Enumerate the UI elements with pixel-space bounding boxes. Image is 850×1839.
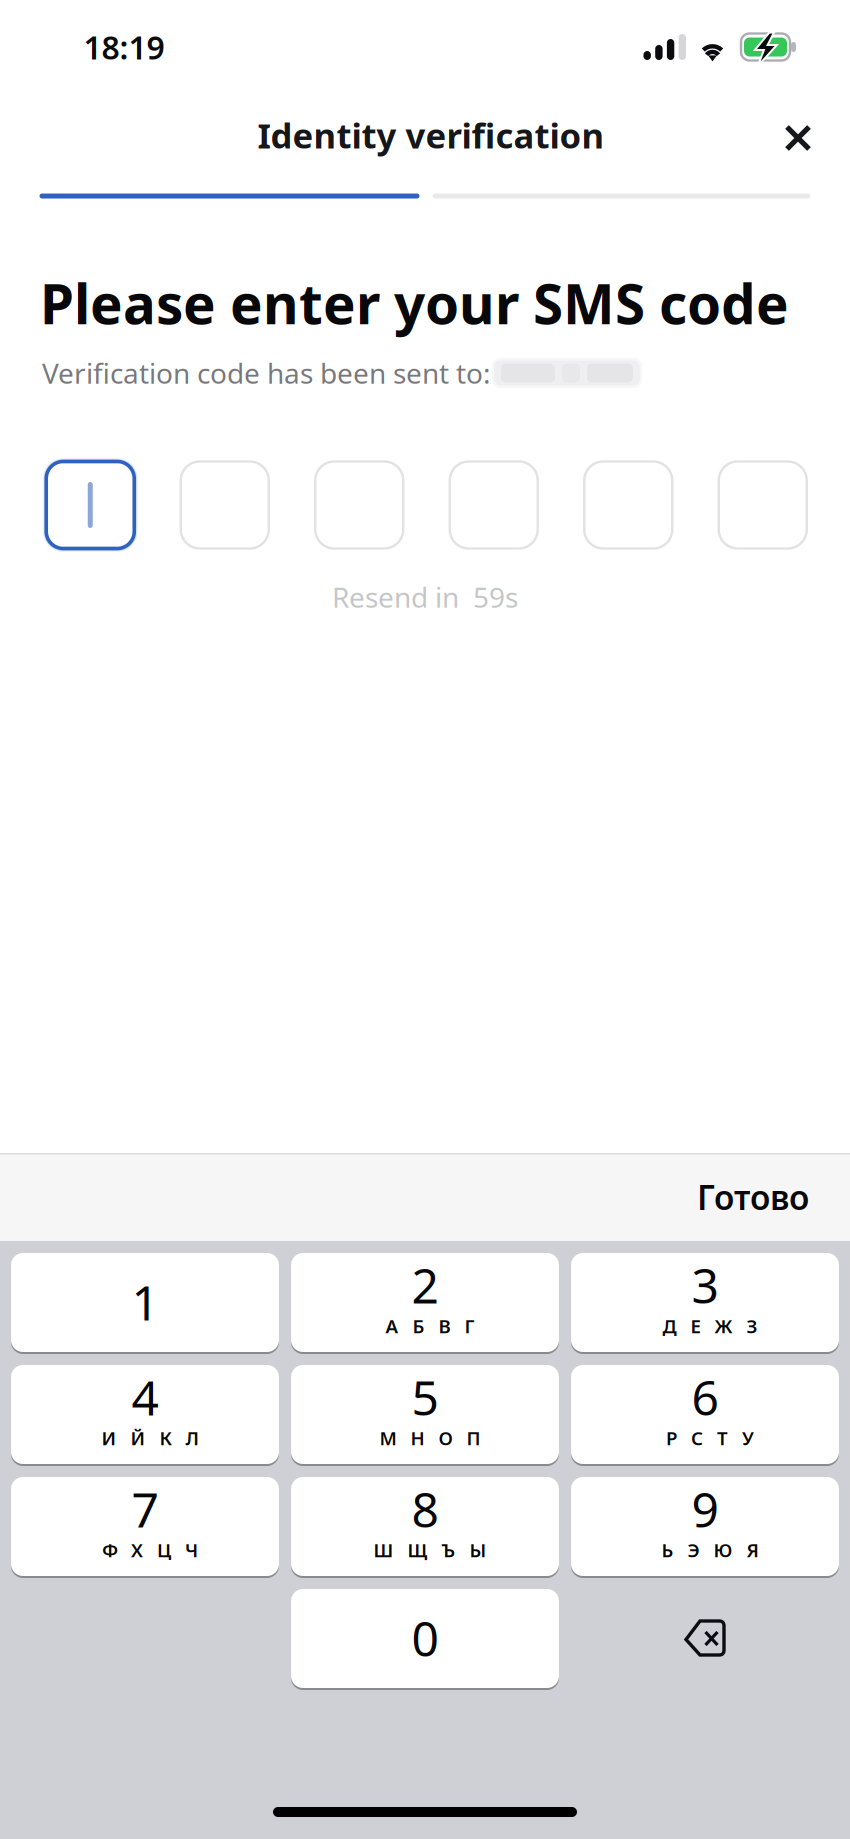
button[interactable]: 3 [571, 1253, 839, 1352]
button[interactable]: Digit 2 [181, 461, 269, 548]
button[interactable]: 6 [571, 1365, 839, 1464]
staticText: ФХЦЧ [102, 1538, 198, 1562]
staticText: ДЕЖЗ [662, 1314, 757, 1338]
staticText: 3 [691, 1253, 718, 1317]
button[interactable]: 2 [291, 1253, 559, 1352]
button[interactable]: Digit 5 [584, 461, 672, 548]
staticText: 4 [131, 1365, 158, 1429]
staticText: Готово [697, 1175, 809, 1219]
button[interactable]: Delete [571, 1589, 839, 1688]
button[interactable]: 5 [291, 1365, 559, 1464]
staticText: 0 [411, 1606, 438, 1670]
staticText: МНОП [379, 1426, 480, 1450]
staticText: 2 [411, 1253, 438, 1317]
button[interactable]: 8 [291, 1477, 559, 1576]
button[interactable]: Готово [656, 1153, 850, 1241]
staticText: 7 [131, 1477, 158, 1541]
button[interactable]: Digit 3 [315, 461, 403, 548]
button[interactable]: 1 [11, 1253, 279, 1352]
staticText: ЬЭЮЯ [661, 1538, 758, 1562]
staticText: 5 [411, 1365, 438, 1429]
staticText: ШЩЪЫ [373, 1538, 486, 1562]
button[interactable]: 9 [571, 1477, 839, 1576]
button[interactable]: Digit 6 [719, 461, 807, 548]
staticText: Verification code has been sent to: [42, 354, 491, 392]
staticText: 6 [691, 1365, 718, 1429]
staticText: АБВГ [385, 1314, 474, 1338]
staticText: 9 [691, 1477, 718, 1541]
button[interactable]: 7 [11, 1477, 279, 1576]
button[interactable]: Close [760, 100, 836, 176]
staticText: 18:19 [83, 26, 164, 68]
staticText: РСТУ [666, 1426, 754, 1450]
button[interactable]: 4 [11, 1365, 279, 1464]
staticText: Resend in 59s [332, 578, 518, 616]
staticText: 1 [131, 1270, 158, 1334]
button[interactable]: Digit 4 [450, 461, 538, 548]
staticText: Please enter your SMS code [40, 267, 789, 339]
button[interactable]: Digit 1, editing [46, 461, 134, 548]
staticText: Identity verification [257, 112, 604, 158]
button[interactable]: 0 [291, 1589, 559, 1688]
staticText: ИЙКЛ [101, 1426, 198, 1450]
staticText: 8 [411, 1477, 438, 1541]
